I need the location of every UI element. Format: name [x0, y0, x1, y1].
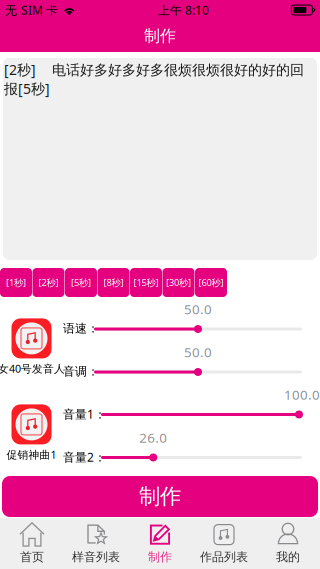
staticText: 26.0 — [139, 429, 167, 446]
button[interactable]: 制作 — [2, 476, 318, 517]
staticText: 音量1： — [63, 406, 106, 422]
button[interactable]: [30秒] — [162, 268, 194, 297]
staticText: 制作 — [139, 483, 181, 510]
staticText: 无 SIM 卡 — [5, 2, 58, 18]
button[interactable]: 作品列表 — [192, 518, 256, 569]
button[interactable]: [8秒] — [97, 268, 129, 297]
staticText: [60秒] — [198, 276, 223, 289]
staticText: 制作 — [144, 26, 176, 46]
staticText: [2秒] — [38, 276, 58, 289]
staticText: [2秒] 电话好多好多好多很烦很烦很好的好的回报[5秒] — [4, 60, 304, 98]
staticText: 促销神曲1 — [6, 447, 56, 462]
staticText: [1秒] — [6, 276, 26, 289]
staticText: 50.0 — [184, 343, 212, 361]
button[interactable]: [60秒] — [195, 268, 227, 297]
staticText: [15秒] — [133, 276, 158, 289]
button[interactable]: 样音列表 — [64, 518, 128, 569]
staticText: 首页 — [20, 550, 44, 564]
button[interactable]: 制作 — [128, 518, 192, 569]
button[interactable]: [15秒] — [130, 268, 162, 297]
staticText: 音量2： — [63, 449, 106, 465]
staticText: [30秒] — [166, 276, 191, 289]
button[interactable]: [2秒] — [32, 268, 64, 297]
button[interactable]: 我的 — [256, 518, 320, 569]
staticText: 作品列表 — [200, 550, 248, 564]
staticText: 我的 — [276, 550, 300, 564]
staticText: 语速： — [63, 321, 99, 336]
staticText: 制作 — [148, 550, 172, 564]
button[interactable]: 促销神曲1 — [0, 404, 63, 462]
button[interactable]: 女40号发音人 — [0, 318, 63, 376]
staticText: [8秒] — [103, 276, 123, 289]
button[interactable]: [1秒] — [0, 268, 32, 297]
staticText: [5秒] — [71, 276, 91, 289]
button[interactable]: [5秒] — [65, 268, 97, 297]
button[interactable]: 首页 — [0, 518, 64, 569]
staticText: 样音列表 — [72, 550, 120, 564]
staticText: 音调： — [63, 364, 99, 379]
staticText: 上午 8:10 — [158, 2, 209, 18]
staticText: 50.0 — [184, 300, 212, 318]
staticText: 女40号发音人 — [0, 361, 65, 376]
staticText: 100.0 — [284, 386, 320, 403]
